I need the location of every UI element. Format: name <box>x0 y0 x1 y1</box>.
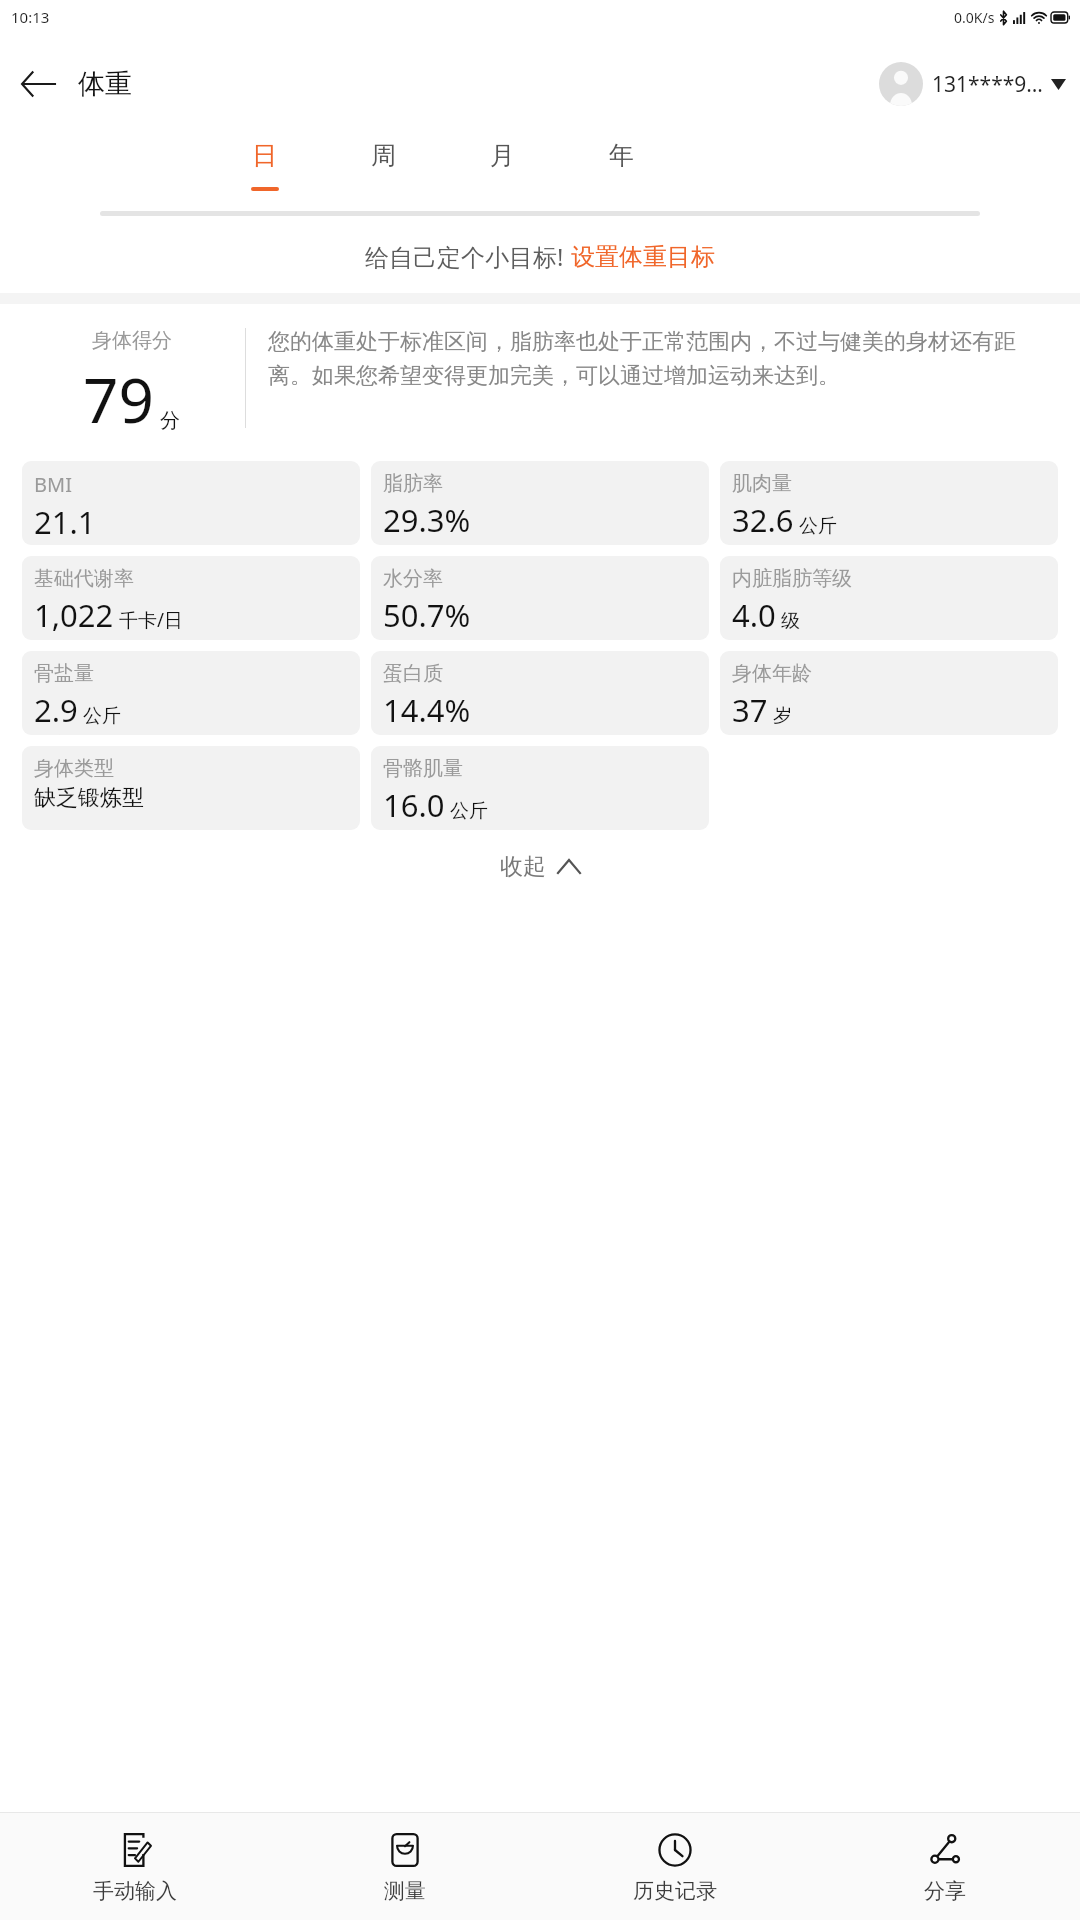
staticText: BMI <box>34 471 72 498</box>
staticText: 身体年龄 <box>732 661 812 686</box>
staticText: 级 <box>781 609 800 633</box>
staticText: 您的体重处于标准区间，脂肪率也处于正常范围内，不过与健美的身材还有距离。如果您希… <box>268 328 1056 390</box>
staticText: 身体得分 <box>92 328 172 353</box>
button[interactable]: 测量 <box>270 1823 540 1910</box>
button[interactable]: 给自己定个小目标! <box>0 240 1080 273</box>
staticText: 50.7% <box>383 594 471 636</box>
staticText: 29.3% <box>383 499 471 541</box>
button[interactable]: 日 <box>205 134 324 191</box>
staticText: 年 <box>609 140 634 171</box>
staticText: 骨骼肌量 <box>383 756 463 781</box>
button[interactable]: 手动输入 <box>0 1823 270 1910</box>
button[interactable]: 肌肉量 <box>720 461 1058 545</box>
staticText: 内脏脂肪等级 <box>732 566 852 591</box>
staticText: 脂肪率 <box>383 471 443 496</box>
button[interactable]: 分享 <box>810 1823 1080 1910</box>
staticText: 收起 <box>500 852 546 881</box>
staticText: 公斤 <box>799 514 837 538</box>
staticText: 缺乏锻炼型 <box>34 784 144 812</box>
staticText: 1,022 <box>34 594 114 636</box>
staticText: 16.0 <box>383 784 445 826</box>
staticText: 手动输入 <box>93 1878 177 1904</box>
staticText: 公斤 <box>450 799 488 823</box>
staticText: 79 <box>83 357 154 441</box>
button[interactable]: 身体年龄 <box>720 651 1058 735</box>
staticText: 131****9… <box>932 70 1043 99</box>
staticText: 2.9 <box>34 689 78 731</box>
button[interactable]: Back <box>10 56 66 112</box>
button[interactable]: 131****9… <box>879 62 1066 106</box>
staticText: 月 <box>490 140 515 171</box>
staticText: 历史记录 <box>633 1878 717 1904</box>
staticText: 测量 <box>384 1878 426 1904</box>
button[interactable]: 内脏脂肪等级 <box>720 556 1058 640</box>
staticText: 基础代谢率 <box>34 566 134 591</box>
staticText: 分 <box>160 408 180 433</box>
staticText: 肌肉量 <box>732 471 792 496</box>
staticText: 身体类型 <box>34 756 114 781</box>
staticText: 21.1 <box>34 501 96 543</box>
button[interactable]: 身体类型 <box>22 746 360 830</box>
staticText: 0.0K/s <box>954 8 995 27</box>
staticText: 周 <box>371 140 396 171</box>
staticText: 日 <box>252 140 277 171</box>
staticText: 骨盐量 <box>34 661 94 686</box>
staticText: 蛋白质 <box>383 661 443 686</box>
button[interactable]: 周 <box>324 134 443 191</box>
staticText: 32.6 <box>732 499 794 541</box>
staticText: 37 <box>732 689 768 731</box>
button[interactable]: 历史记录 <box>540 1823 810 1910</box>
staticText: 10:13 <box>11 7 50 27</box>
staticText: 14.4% <box>383 689 471 731</box>
staticText: 体重 <box>78 67 132 101</box>
button[interactable]: 水分率 <box>371 556 709 640</box>
button[interactable]: 月 <box>443 134 562 191</box>
button[interactable]: 蛋白质 <box>371 651 709 735</box>
button[interactable]: 收起 <box>0 852 1080 881</box>
staticText: 4.0 <box>732 594 776 636</box>
staticText: 给自己定个小目标! <box>365 240 564 273</box>
button[interactable]: 年 <box>562 134 681 191</box>
staticText: 公斤 <box>83 704 121 728</box>
staticText: 千卡/日 <box>119 607 184 633</box>
button[interactable]: 骨骼肌量 <box>371 746 709 830</box>
staticText: 设置体重目标 <box>571 242 715 272</box>
button[interactable]: 基础代谢率 <box>22 556 360 640</box>
staticText: 水分率 <box>383 566 443 591</box>
button[interactable]: 骨盐量 <box>22 651 360 735</box>
staticText: 分享 <box>924 1878 966 1904</box>
button[interactable]: BMI <box>22 461 360 545</box>
staticText: 岁 <box>773 704 792 728</box>
button[interactable]: 脂肪率 <box>371 461 709 545</box>
